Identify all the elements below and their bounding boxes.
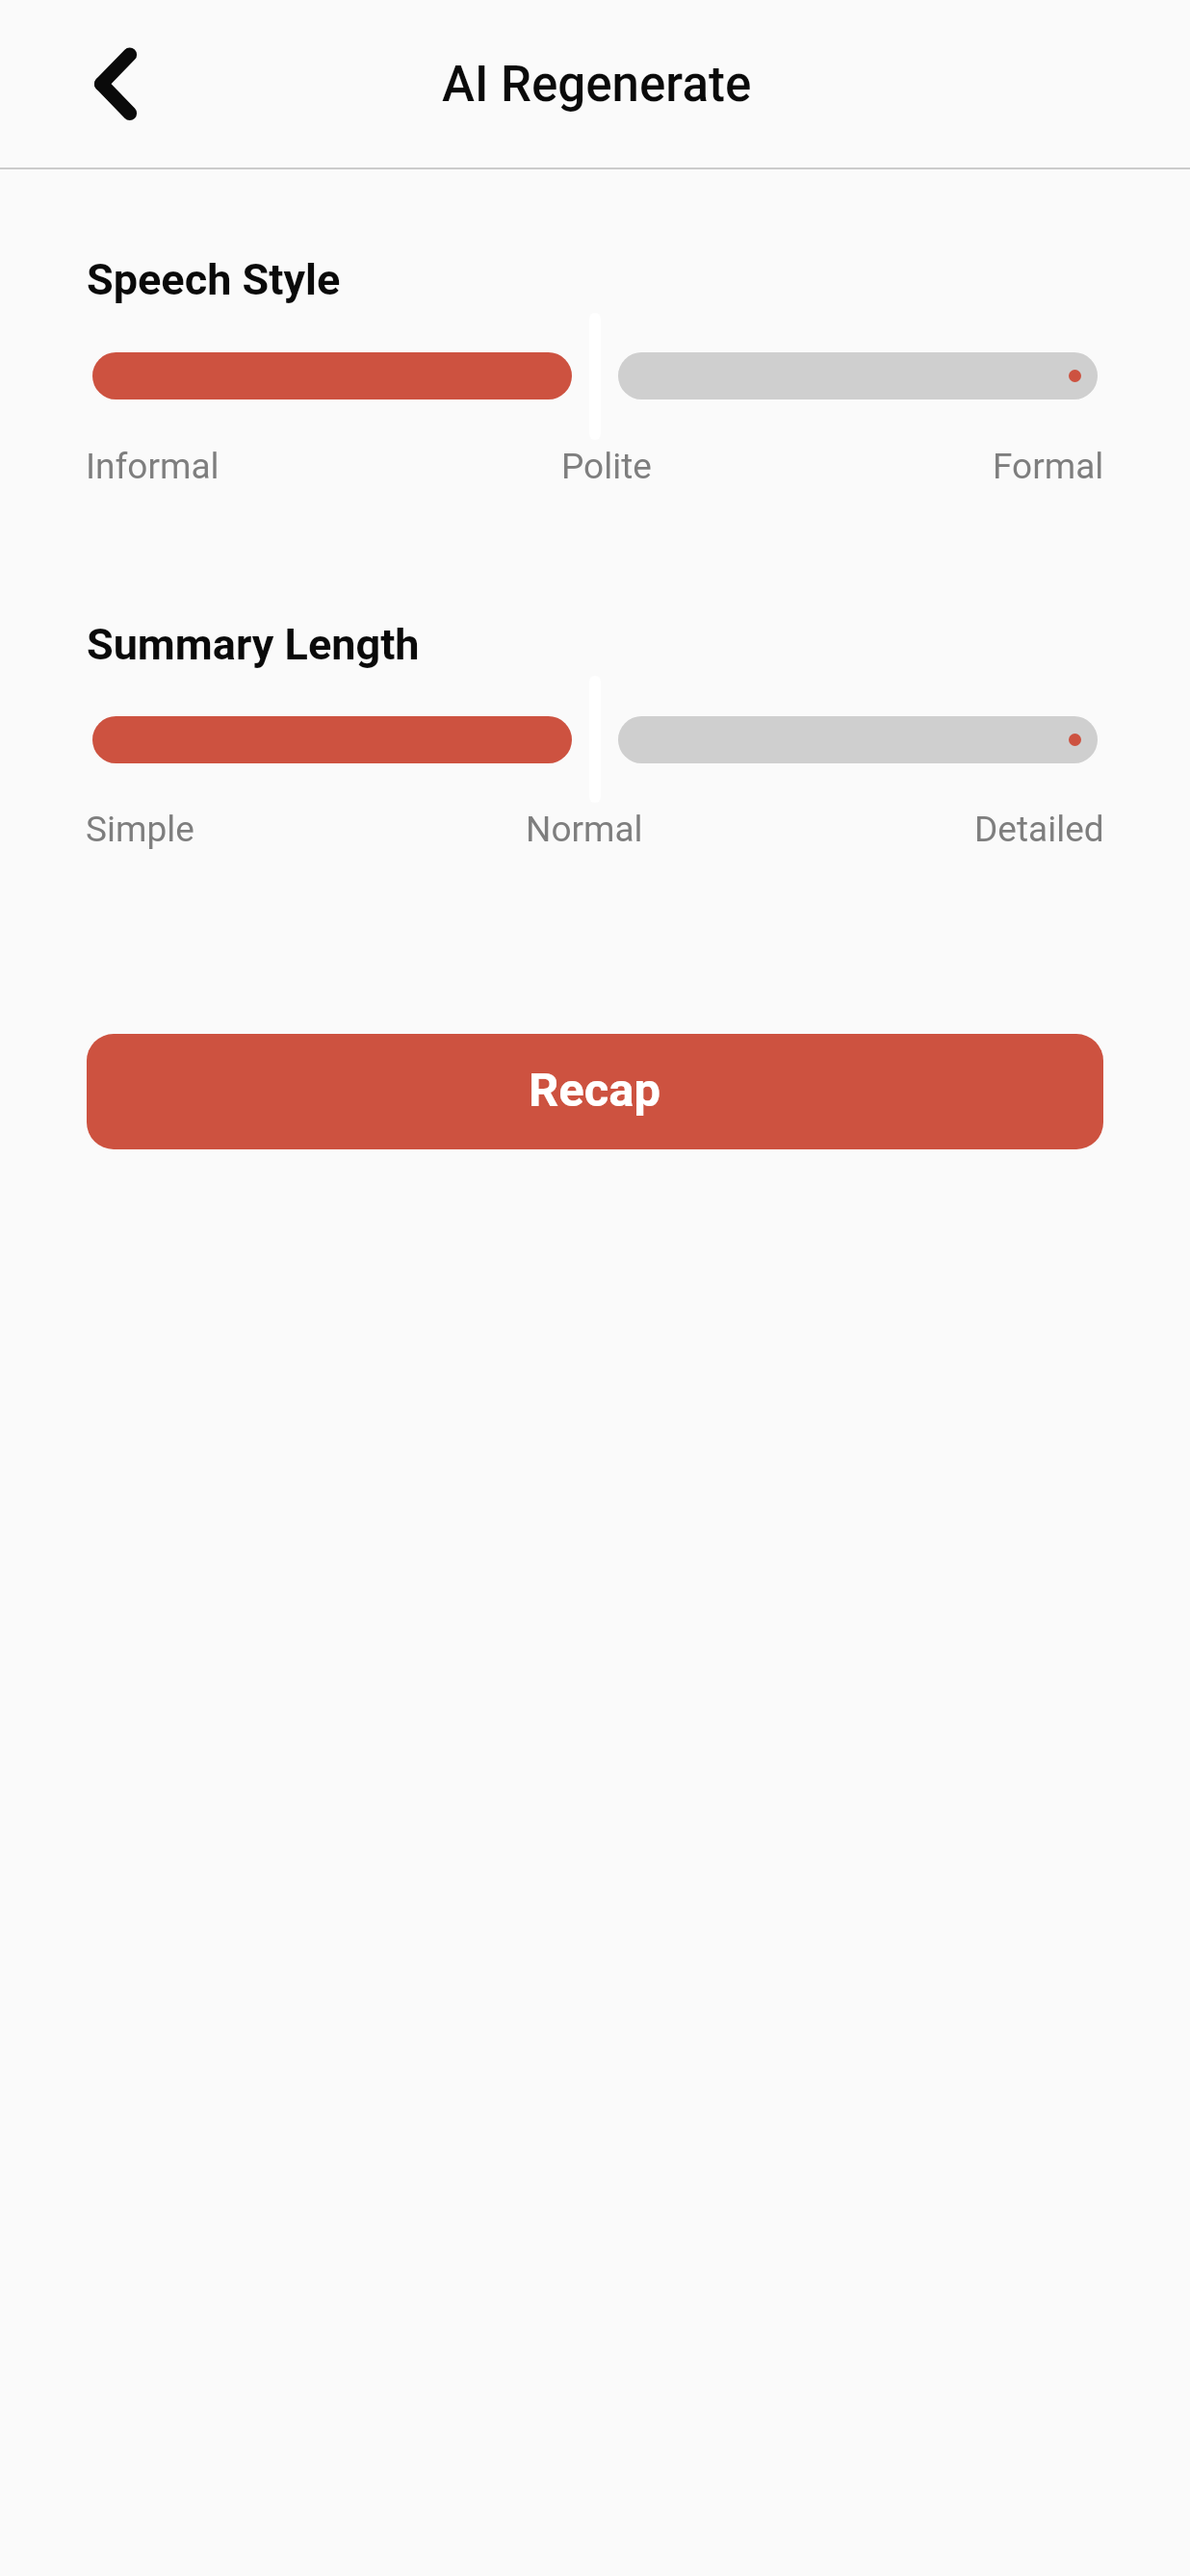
staticText: Summary Length xyxy=(87,619,420,670)
staticText: Polite xyxy=(561,446,652,487)
button[interactable]: Back xyxy=(66,36,163,132)
button[interactable]: Speech Style, increase xyxy=(618,352,1098,399)
staticText: Formal xyxy=(993,446,1104,487)
staticText: Detailed xyxy=(974,809,1104,850)
staticText: Normal xyxy=(526,809,643,850)
staticText: Speech Style xyxy=(87,254,341,305)
staticText: Simple xyxy=(86,809,194,850)
button[interactable]: Recap xyxy=(87,1034,1103,1149)
staticText: Recap xyxy=(529,1063,661,1118)
staticText: Informal xyxy=(86,446,220,487)
staticText: AI Regenerate xyxy=(442,56,752,114)
button[interactable]: Summary Length, increase xyxy=(618,716,1098,763)
button[interactable]: Speech Style, decrease xyxy=(92,352,572,399)
button[interactable]: Summary Length, decrease xyxy=(92,716,572,763)
